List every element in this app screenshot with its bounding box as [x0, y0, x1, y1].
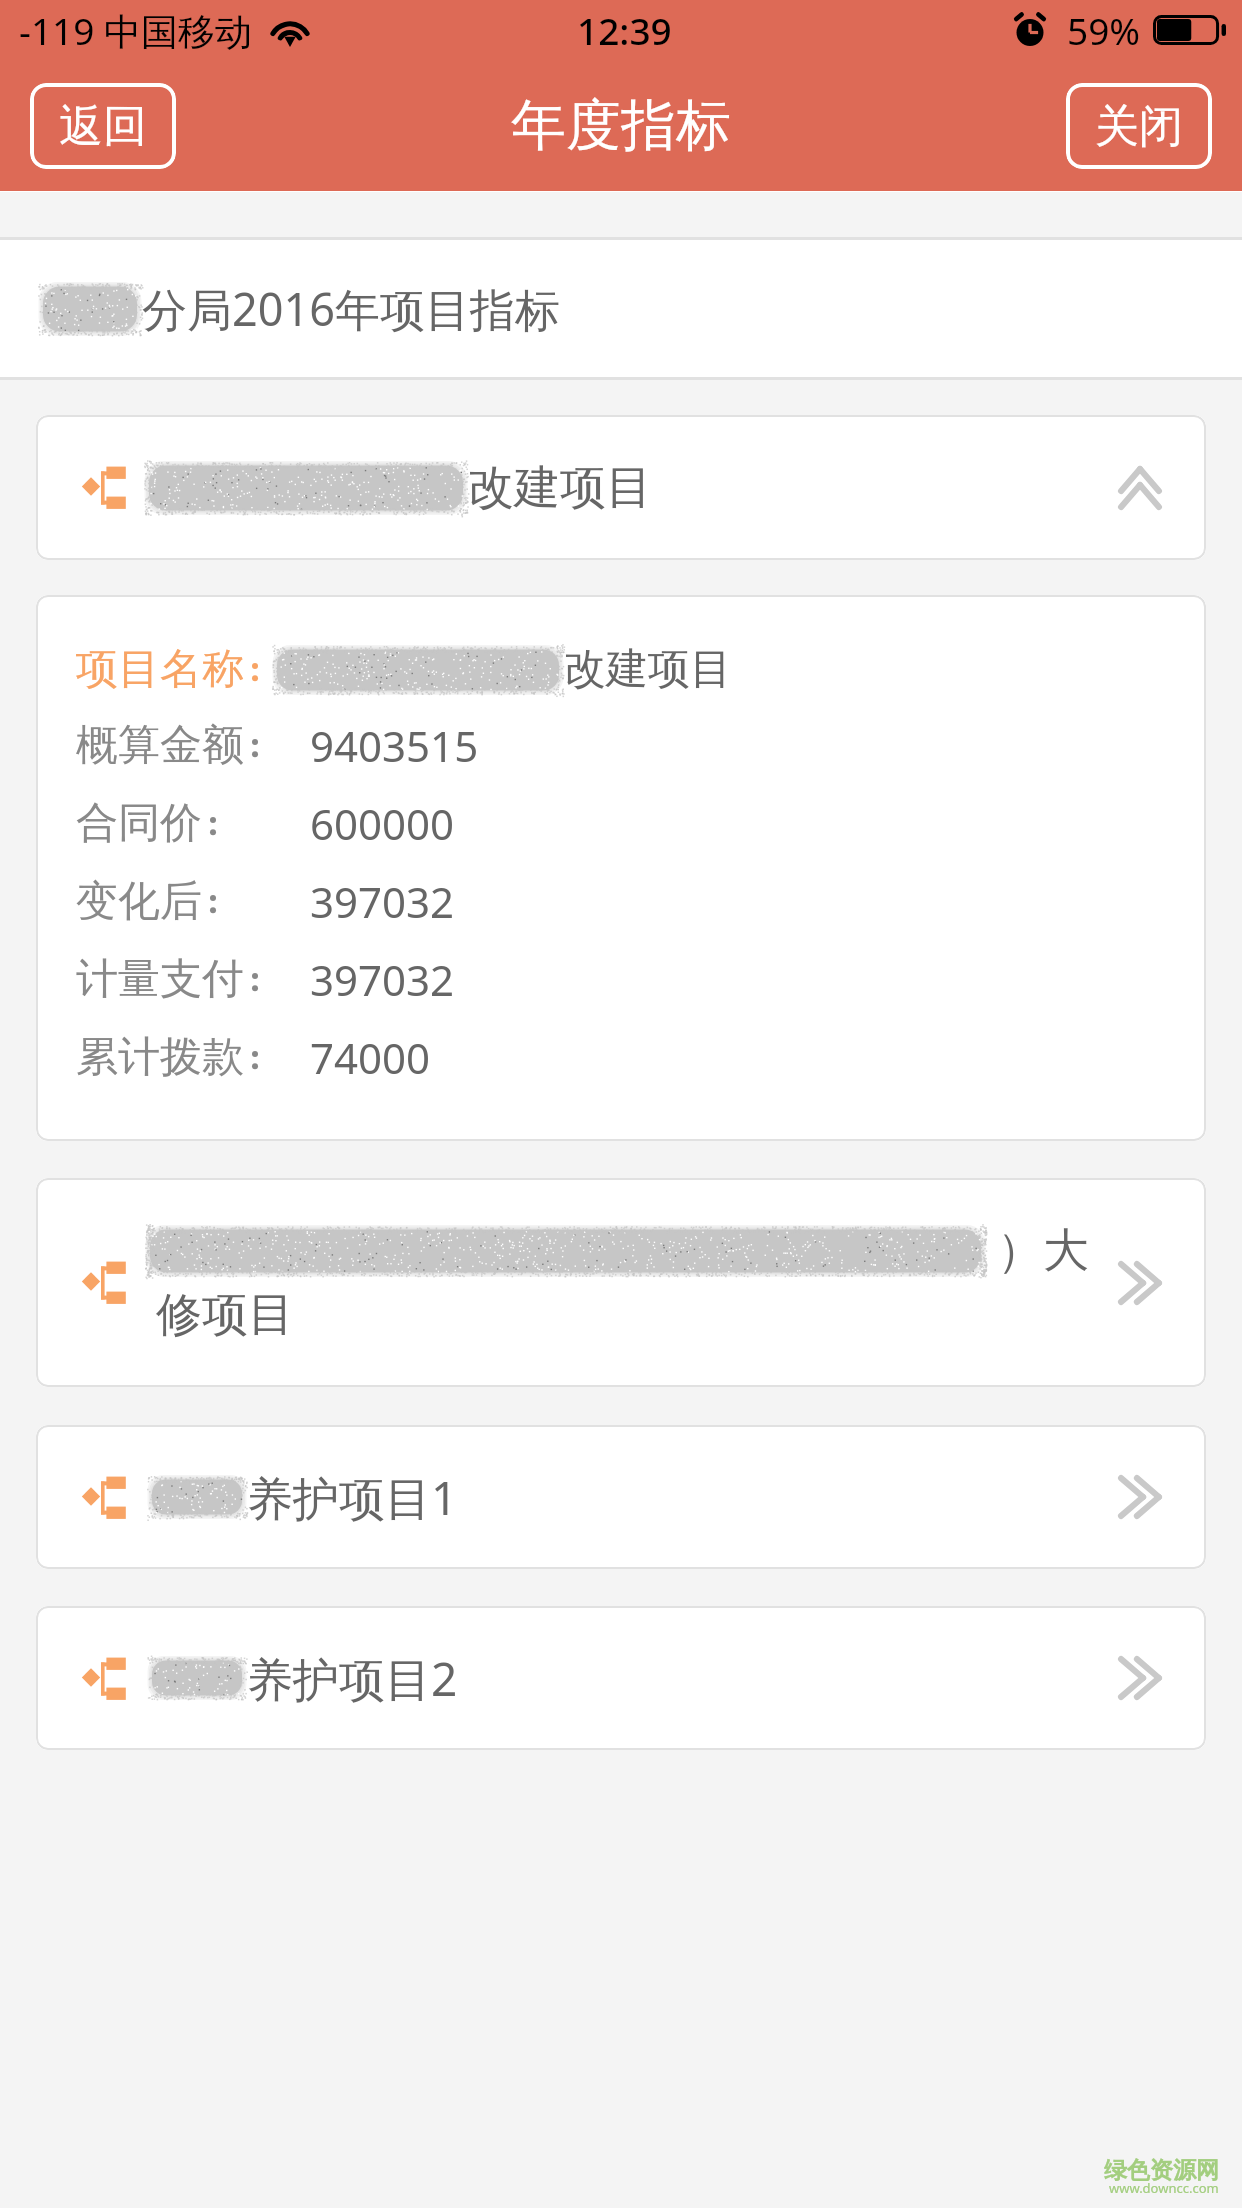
- other: 展开: [1118, 1261, 1162, 1305]
- staticText: 养护项目2: [247, 1647, 458, 1710]
- staticText: 累计拨款: [76, 1031, 244, 1084]
- button[interactable]: 养护项目1: [36, 1425, 1206, 1569]
- staticText: 改建项目: [564, 643, 732, 696]
- staticText: 397032: [310, 873, 455, 930]
- staticText: 74000: [310, 1029, 431, 1086]
- staticText: -119 中国移动: [19, 5, 253, 56]
- staticText: 关闭: [1095, 99, 1183, 154]
- button[interactable]: 养护项目2: [36, 1606, 1206, 1750]
- other: 展开: [1118, 1475, 1162, 1519]
- other: 收起: [1118, 466, 1162, 510]
- staticText: 分局2016年项目指标: [142, 278, 560, 339]
- staticText: 12:39: [577, 5, 672, 55]
- staticText: ）大: [997, 1222, 1089, 1280]
- staticText: 项目名称: [76, 643, 244, 696]
- button[interactable]: 改建项目: [36, 415, 1206, 560]
- staticText: 返回: [59, 99, 147, 154]
- staticText: 变化后: [76, 875, 202, 928]
- staticText: 计量支付: [76, 953, 244, 1006]
- staticText: 绿色资源网: [1104, 2156, 1219, 2185]
- staticText: 改建项目: [468, 459, 652, 517]
- button[interactable]: 返回: [30, 83, 176, 169]
- button[interactable]: ）大: [36, 1178, 1206, 1387]
- staticText: 397032: [310, 951, 455, 1008]
- staticText: www.downcc.com: [1109, 2179, 1219, 2197]
- staticText: 600000: [310, 795, 455, 852]
- other: 展开: [1118, 1656, 1162, 1700]
- staticText: 修项目: [156, 1286, 294, 1344]
- staticText: 养护项目1: [247, 1466, 458, 1529]
- button[interactable]: 关闭: [1066, 83, 1212, 169]
- staticText: 合同价: [76, 797, 202, 850]
- staticText: 59%: [1067, 5, 1141, 55]
- staticText: 9403515: [310, 717, 479, 774]
- staticText: 概算金额: [76, 719, 244, 772]
- staticText: 年度指标: [511, 91, 731, 160]
